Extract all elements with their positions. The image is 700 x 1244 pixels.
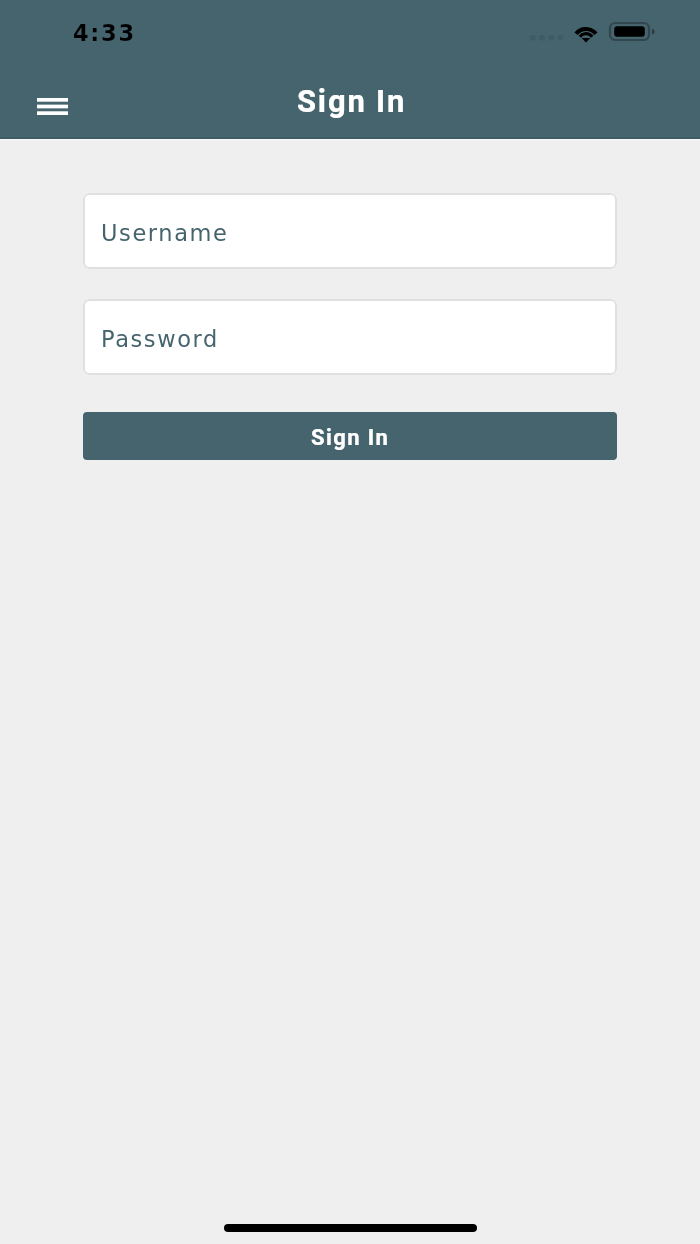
staticText: 4:33 bbox=[73, 20, 136, 46]
button[interactable]: Username bbox=[83, 193, 617, 269]
staticText: Username bbox=[101, 220, 229, 246]
staticText: Sign In bbox=[297, 83, 407, 119]
button[interactable]: Sign In bbox=[83, 412, 617, 460]
button[interactable]: Open navigation menu bbox=[22, 76, 82, 136]
staticText: Password bbox=[101, 326, 219, 352]
staticText: Sign In bbox=[311, 425, 390, 451]
button[interactable]: Password bbox=[83, 299, 617, 375]
